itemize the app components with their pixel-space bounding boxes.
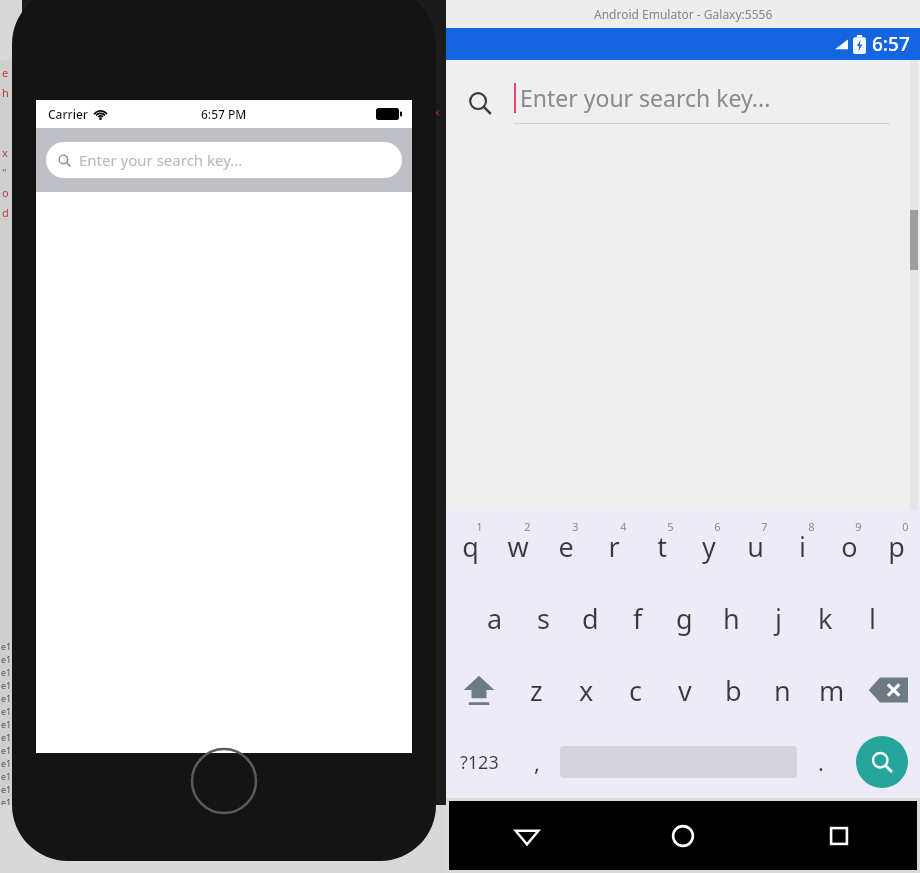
staticText: e1 bbox=[1, 770, 12, 783]
button[interactable]: Back bbox=[449, 801, 605, 870]
button[interactable]: ?123 bbox=[446, 726, 513, 798]
button[interactable]: 8 bbox=[779, 510, 826, 582]
button[interactable]: v bbox=[660, 654, 709, 726]
button[interactable]: Recents bbox=[761, 801, 917, 870]
button[interactable]: 4 bbox=[590, 510, 638, 582]
staticText: 3 bbox=[572, 519, 579, 534]
button[interactable]: 3 bbox=[542, 510, 590, 582]
staticText: Carrier bbox=[48, 106, 88, 122]
staticText: i bbox=[799, 528, 806, 565]
staticText: c bbox=[629, 672, 642, 709]
staticText: s// bbox=[1, 809, 13, 821]
button[interactable]: s bbox=[519, 582, 567, 654]
button[interactable]: 7 bbox=[732, 510, 779, 582]
staticText: o bbox=[841, 528, 858, 565]
staticText: h bbox=[2, 85, 9, 100]
button[interactable]: b bbox=[709, 654, 758, 726]
staticText: e bbox=[2, 65, 9, 80]
button[interactable]: 2 bbox=[494, 510, 542, 582]
staticText: b bbox=[725, 672, 742, 709]
button[interactable]: f bbox=[614, 582, 661, 654]
staticText: ?123 bbox=[460, 750, 499, 775]
button[interactable]: Home bbox=[605, 801, 761, 870]
button[interactable]: c bbox=[611, 654, 660, 726]
staticText: e1 bbox=[1, 640, 12, 653]
staticText: e1 bbox=[1, 744, 12, 757]
staticText: , bbox=[534, 747, 540, 777]
staticText: 4 bbox=[620, 519, 627, 534]
staticText: e1 bbox=[1, 796, 12, 809]
button[interactable]: g bbox=[661, 582, 708, 654]
button[interactable]: Home bbox=[190, 747, 258, 815]
staticText: k bbox=[818, 600, 833, 637]
staticText: e1 bbox=[1, 757, 12, 770]
button[interactable]: a bbox=[471, 582, 519, 654]
staticText: e1 bbox=[1, 692, 12, 705]
staticText: v bbox=[678, 672, 692, 709]
staticText: s bbox=[537, 600, 550, 637]
button[interactable]: j bbox=[755, 582, 802, 654]
staticText: 1 bbox=[476, 519, 483, 534]
staticText: 9 bbox=[855, 519, 862, 534]
staticText: 2 bbox=[524, 519, 531, 534]
button[interactable]: z bbox=[511, 654, 561, 726]
staticText: 6:57 PM bbox=[201, 106, 247, 122]
staticText: e1 bbox=[1, 783, 12, 796]
button[interactable]: 0 bbox=[873, 510, 920, 582]
button[interactable]: 6 bbox=[685, 510, 732, 582]
staticText: u bbox=[747, 528, 764, 565]
staticText: t bbox=[657, 528, 667, 565]
staticText: Android Emulator - Galaxy:5556 bbox=[594, 6, 773, 22]
staticText: 6 bbox=[714, 519, 721, 534]
button[interactable]: Backspace bbox=[856, 654, 920, 726]
staticText: A( bbox=[427, 796, 436, 809]
staticText: q bbox=[462, 528, 479, 565]
staticText: w bbox=[507, 528, 529, 565]
button[interactable]: 9 bbox=[826, 510, 873, 582]
button[interactable]: n bbox=[758, 654, 807, 726]
button[interactable]: Enter your search key... bbox=[468, 82, 890, 124]
button[interactable]: Enter your search key... bbox=[46, 142, 402, 178]
staticText: h bbox=[723, 600, 740, 637]
staticText: x bbox=[579, 672, 594, 709]
button[interactable]: x bbox=[561, 654, 611, 726]
button[interactable]: m bbox=[807, 654, 856, 726]
staticText: Enter your search key... bbox=[79, 150, 243, 170]
button[interactable]: 5 bbox=[638, 510, 685, 582]
staticText: l bbox=[869, 600, 876, 637]
staticText: r bbox=[608, 528, 620, 565]
button[interactable]: d bbox=[567, 582, 614, 654]
button[interactable]: 1 bbox=[446, 510, 494, 582]
button[interactable]: k bbox=[802, 582, 849, 654]
button[interactable]: h bbox=[708, 582, 755, 654]
staticText: j bbox=[775, 600, 782, 637]
button[interactable]: , bbox=[513, 726, 560, 798]
button[interactable]: l bbox=[849, 582, 896, 654]
button[interactable]: Search bbox=[856, 736, 908, 788]
staticText: e1 bbox=[1, 718, 12, 731]
button[interactable]: Shift bbox=[446, 654, 511, 726]
staticText: n bbox=[774, 672, 791, 709]
staticText: x bbox=[434, 104, 440, 119]
staticText: 0 bbox=[902, 519, 909, 534]
staticText: . bbox=[818, 747, 824, 777]
staticText: z bbox=[530, 672, 543, 709]
staticText: e1 bbox=[1, 653, 12, 666]
staticText: 8 bbox=[808, 519, 815, 534]
staticText: e bbox=[558, 528, 574, 565]
button[interactable]: . bbox=[797, 726, 844, 798]
staticText: p bbox=[888, 528, 905, 565]
staticText: e1 bbox=[1, 666, 12, 679]
staticText: m bbox=[819, 672, 845, 709]
